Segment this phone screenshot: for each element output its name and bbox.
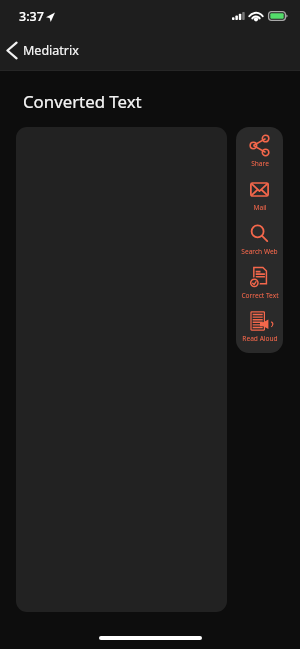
button[interactable]: Correct Text bbox=[236, 261, 283, 305]
button[interactable]: Share bbox=[236, 129, 283, 173]
staticText: Mail bbox=[253, 203, 267, 212]
button[interactable]: Mail bbox=[236, 173, 283, 217]
button[interactable]: Search Web bbox=[236, 217, 283, 261]
button[interactable]: Mediatrix bbox=[0, 30, 91, 70]
staticText: Converted Text bbox=[23, 90, 142, 113]
staticText: Share bbox=[251, 159, 269, 168]
staticText: 3:37 bbox=[19, 8, 44, 25]
staticText: Correct Text bbox=[241, 291, 279, 300]
staticText: Search Web bbox=[241, 247, 278, 256]
staticText: Mediatrix bbox=[23, 42, 79, 59]
staticText: Read Aloud bbox=[242, 334, 278, 343]
button[interactable]: Read Aloud bbox=[236, 305, 283, 349]
